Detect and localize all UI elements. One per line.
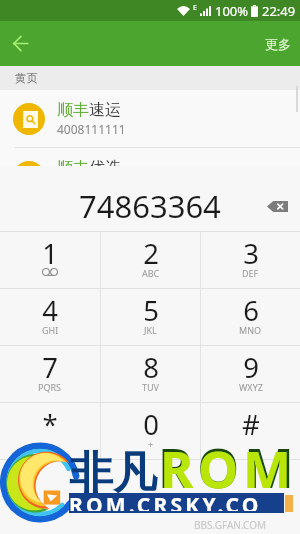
staticText: #: [242, 406, 260, 443]
staticText: 1: [42, 235, 58, 272]
staticText: 3: [243, 235, 259, 272]
staticText: 7: [42, 349, 58, 386]
staticText: 非凡: [69, 446, 157, 501]
staticText: 0: [143, 406, 159, 443]
staticText: ABC: [142, 267, 160, 279]
staticText: 22:49: [262, 2, 296, 20]
staticText: 优选: [89, 158, 121, 178]
staticText: 黄页: [15, 71, 38, 85]
button[interactable]: 2: [101, 232, 200, 288]
button[interactable]: 顺丰: [0, 90, 300, 147]
staticText: 更多: [265, 36, 291, 52]
staticText: 速运: [89, 100, 121, 120]
button[interactable]: 更多: [255, 28, 300, 60]
button[interactable]: 3: [201, 232, 300, 288]
button[interactable]: #: [201, 403, 300, 459]
staticText: WXYZ: [239, 381, 263, 393]
button[interactable]: 0: [101, 403, 200, 459]
staticText: +: [148, 438, 154, 450]
staticText: 8: [143, 349, 159, 386]
staticText: BBS.GFAN.COM: [194, 518, 267, 532]
button[interactable]: 顺丰: [0, 148, 300, 205]
staticText: ROM: [158, 431, 299, 503]
staticText: ROM.CRSKY.COM: [69, 491, 284, 511]
staticText: 顺丰: [57, 158, 89, 178]
button[interactable]: 5: [101, 289, 200, 345]
button[interactable]: 6: [201, 289, 300, 345]
staticText: DEF: [242, 267, 259, 279]
staticText: JKL: [144, 324, 157, 336]
staticText: TUV: [142, 381, 159, 393]
button[interactable]: 4: [0, 289, 100, 345]
button[interactable]: Back: [0, 23, 41, 64]
staticText: 5: [143, 292, 159, 329]
staticText: 4: [42, 292, 58, 329]
staticText: 100%: [215, 2, 249, 20]
staticText: 4008111111: [57, 121, 126, 137]
staticText: ROM: [160, 433, 296, 502]
staticText: PQRS: [38, 381, 62, 393]
staticText: 6: [243, 292, 259, 329]
staticText: *: [42, 406, 58, 443]
staticText: GHI: [42, 324, 59, 336]
staticText: 74863364: [79, 185, 221, 227]
staticText: MNO: [239, 324, 262, 336]
button[interactable]: *: [0, 403, 100, 459]
button[interactable]: 1: [0, 232, 100, 288]
staticText: 2: [143, 235, 159, 272]
staticText: 9: [243, 349, 259, 386]
staticText: 顺丰: [57, 100, 89, 120]
staticText: E: [193, 3, 197, 13]
button[interactable]: Backspace: [259, 188, 295, 224]
button[interactable]: 7: [0, 346, 100, 402]
button[interactable]: 8: [101, 346, 200, 402]
button[interactable]: 9: [201, 346, 300, 402]
